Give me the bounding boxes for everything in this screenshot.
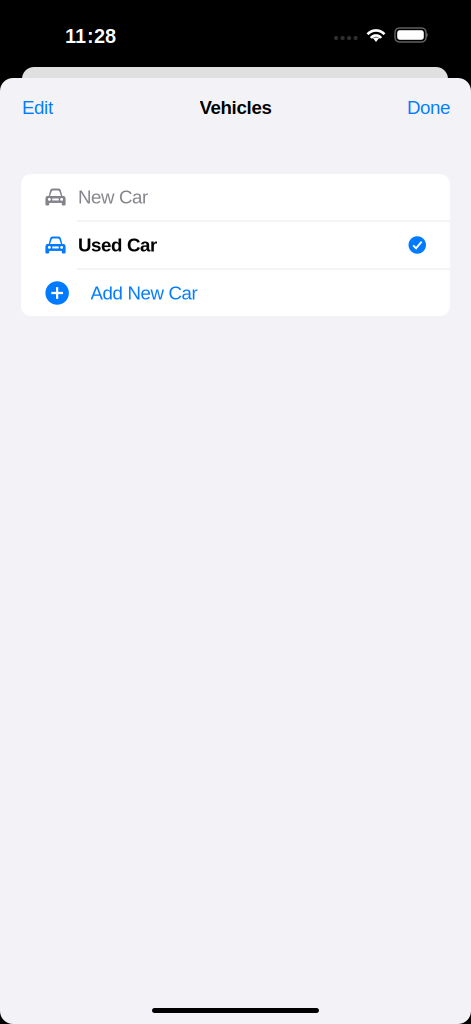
staticText: Vehicles [199, 97, 271, 118]
button[interactable]: Used Car [21, 221, 450, 268]
staticText: Used Car [78, 235, 157, 255]
staticText: 11:28 [65, 25, 116, 47]
staticText: New Car [78, 187, 148, 207]
button[interactable]: Edit [0, 88, 63, 127]
staticText: Add New Car [91, 283, 198, 303]
staticText: Edit [22, 97, 53, 118]
button[interactable]: New Car [21, 173, 450, 220]
staticText: Done [407, 97, 450, 118]
button[interactable]: Add New Car [21, 269, 450, 316]
button[interactable]: Done [397, 88, 471, 127]
